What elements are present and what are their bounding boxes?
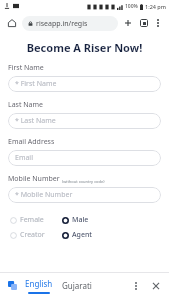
staticText: * First Name [15, 79, 57, 89]
button[interactable]: Gujarati [62, 280, 92, 291]
button[interactable]: Female [10, 215, 62, 225]
button[interactable]: * Mobile Number [8, 187, 161, 203]
staticText: Male [72, 215, 89, 225]
button[interactable]: Close [149, 279, 163, 293]
button[interactable]: Agent [62, 230, 114, 240]
staticText: Last Name [8, 100, 44, 110]
button[interactable]: Male [62, 215, 114, 225]
button[interactable]: Email [8, 150, 161, 166]
button[interactable]: Google Translate [6, 279, 19, 292]
staticText: (without country code) [62, 179, 105, 184]
staticText: Creator [20, 230, 45, 240]
staticText: Become A Riser Now! [0, 40, 169, 55]
button[interactable]: Creator [10, 230, 62, 240]
staticText: First Name [8, 63, 44, 73]
button[interactable]: More options [152, 17, 164, 29]
button[interactable]: * Last Name [8, 113, 161, 129]
button[interactable]: New tab [121, 16, 135, 30]
staticText: 100% [125, 3, 138, 10]
staticText: * Last Name [15, 116, 56, 126]
staticText: Gujarati [62, 280, 92, 291]
staticText: * Mobile Number [15, 190, 73, 200]
button[interactable]: Tabs [137, 16, 151, 30]
button[interactable]: Home [5, 16, 19, 30]
staticText: Female [20, 215, 44, 225]
button[interactable]: English [25, 278, 53, 294]
button[interactable]: More options [129, 279, 143, 293]
staticText: riseapp.in/regis [36, 19, 88, 29]
staticText: Agent [72, 230, 93, 240]
staticText: 1:24 pm [145, 3, 166, 10]
button[interactable]: riseapp.in/regis [22, 16, 118, 31]
staticText: Email [15, 153, 33, 163]
staticText: English [25, 278, 53, 289]
button[interactable]: * First Name [8, 76, 161, 92]
staticText: Email Address [8, 137, 55, 147]
staticText: Mobile Number [8, 174, 60, 184]
